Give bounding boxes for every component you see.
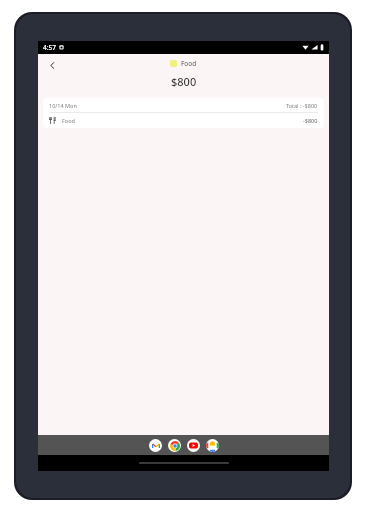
button[interactable]: Gmail xyxy=(149,439,162,452)
staticText: 10/14 Mon xyxy=(49,102,77,109)
staticText: Food xyxy=(181,59,197,68)
button[interactable]: Chrome xyxy=(168,439,181,452)
staticText: $800 xyxy=(171,74,197,89)
staticText: 4:57 xyxy=(43,43,56,52)
button[interactable]: 10/14 Mon xyxy=(43,98,324,112)
button[interactable]: Food xyxy=(43,113,324,128)
staticText: Total : -$800 xyxy=(286,102,318,109)
staticText: -$800 xyxy=(303,117,318,124)
button[interactable]: Back xyxy=(42,55,62,75)
button[interactable]: YouTube xyxy=(187,439,200,452)
staticText: Food xyxy=(62,117,75,124)
button[interactable]: Photos xyxy=(206,439,219,452)
